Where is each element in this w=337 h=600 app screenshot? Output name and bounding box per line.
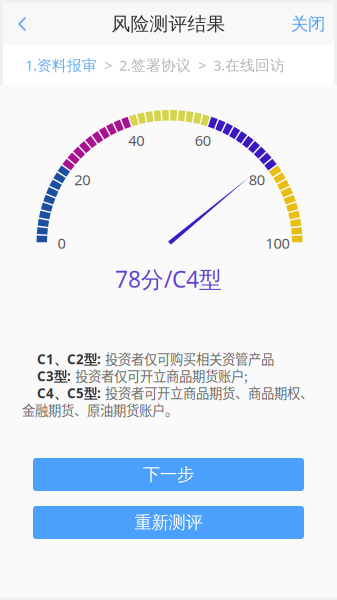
staticText: 2.签署协议 xyxy=(119,55,191,75)
staticText: 1.资料报审 xyxy=(25,55,97,75)
staticText: 关闭 xyxy=(291,13,325,35)
staticText: 80 xyxy=(249,170,265,189)
staticText: C3型: xyxy=(37,367,71,385)
staticText: 0 xyxy=(57,233,65,253)
button[interactable]: Back xyxy=(3,5,43,43)
button[interactable]: 关闭 xyxy=(282,5,334,43)
staticText: 60 xyxy=(195,130,211,150)
staticText: 投资者仅可购买相关资管产品 xyxy=(105,349,274,368)
button[interactable]: 下一步 xyxy=(33,458,304,491)
staticText: 20 xyxy=(74,170,90,189)
button[interactable]: 重新测评 xyxy=(33,506,304,539)
staticText: 78分/C4型 xyxy=(115,264,222,294)
staticText: 金融期货、原油期货账户。 xyxy=(22,400,178,419)
staticText: C4、C5型: xyxy=(37,384,101,402)
staticText: 40 xyxy=(128,130,144,150)
staticText: 重新测评 xyxy=(134,512,202,533)
staticText: 3.在线回访 xyxy=(213,55,285,75)
staticText: C1、C2型: xyxy=(37,350,101,368)
staticText: > xyxy=(104,55,112,75)
staticText: 投资者可开立商品期货、商品期权、 xyxy=(105,383,313,402)
staticText: 投资者仅可开立商品期货账户; xyxy=(75,366,248,385)
staticText: > xyxy=(198,55,206,75)
staticText: 下一步 xyxy=(143,464,194,485)
staticText: 风险测评结果 xyxy=(111,12,225,35)
staticText: 100 xyxy=(265,233,289,253)
